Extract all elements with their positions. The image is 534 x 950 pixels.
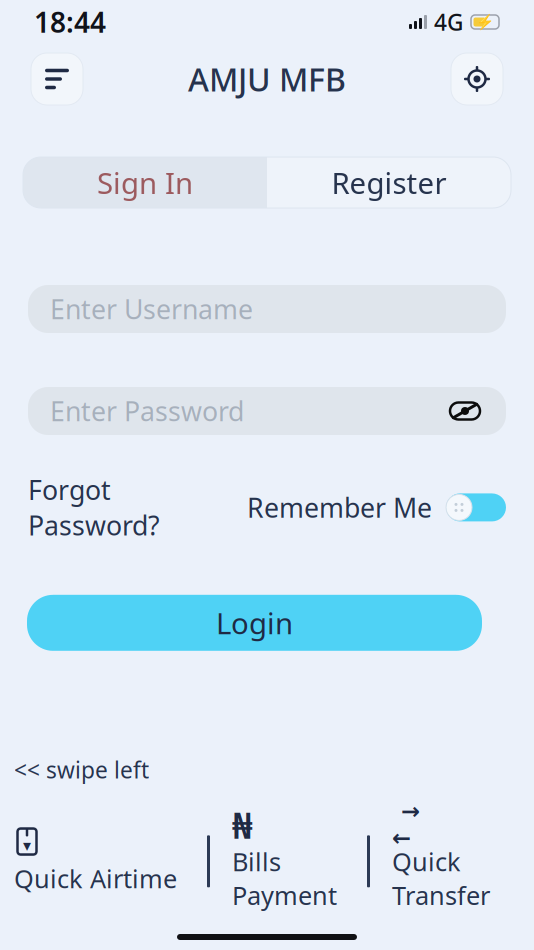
- button[interactable]: Remember Me: [446, 493, 506, 521]
- staticText: Quick Airtime: [14, 861, 177, 895]
- staticText: << swipe left: [14, 755, 149, 785]
- button[interactable]: →: [392, 807, 490, 916]
- button[interactable]: Login: [27, 595, 482, 651]
- button[interactable]: Sign In: [23, 157, 267, 208]
- button[interactable]: Register: [267, 157, 511, 208]
- staticText: →: [401, 798, 420, 824]
- staticText: Remember Me: [247, 490, 432, 525]
- staticText: ₦: [232, 801, 253, 849]
- button[interactable]: Show password: [446, 398, 484, 424]
- button[interactable]: Locate branch: [448, 50, 506, 108]
- staticText: 18:44: [34, 3, 106, 41]
- button[interactable]: Menu: [28, 50, 86, 108]
- staticText: ⚡: [476, 14, 494, 30]
- button[interactable]: ▾: [14, 823, 177, 899]
- staticText: Sign In: [97, 163, 193, 202]
- staticText: Quick Transfer: [392, 845, 490, 912]
- staticText: AMJU MFB: [188, 58, 346, 100]
- button[interactable]: Forgot Password?: [28, 472, 160, 543]
- staticText: ▾: [23, 836, 31, 855]
- button[interactable]: ₦: [232, 807, 337, 916]
- staticText: Register: [331, 163, 446, 202]
- staticText: Login: [216, 603, 293, 642]
- staticText: 4G: [434, 7, 463, 37]
- staticText: Enter Password: [50, 393, 244, 429]
- staticText: Bills Payment: [232, 845, 337, 912]
- staticText: ←: [392, 825, 411, 851]
- staticText: Forgot Password?: [28, 472, 160, 543]
- staticText: Enter Username: [50, 291, 253, 327]
